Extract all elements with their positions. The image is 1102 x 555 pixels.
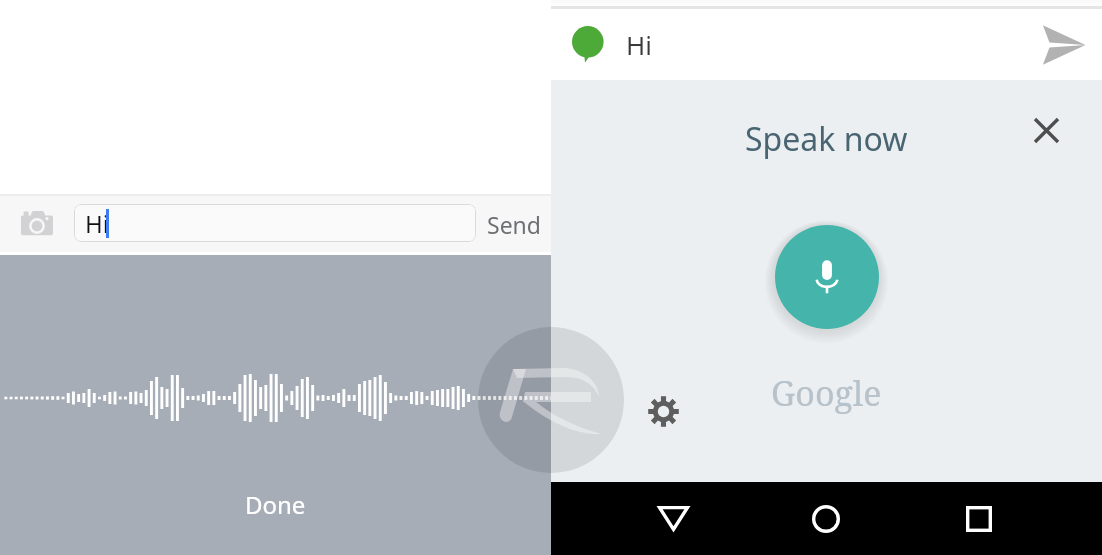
staticText: Hi — [626, 27, 652, 62]
button[interactable]: Recent apps — [947, 482, 1011, 555]
button[interactable]: Send — [1034, 15, 1094, 75]
staticText: Hi — [85, 207, 109, 240]
button[interactable]: Camera — [21, 211, 53, 236]
button[interactable]: Home — [794, 482, 858, 555]
staticText: Done — [245, 488, 306, 521]
staticText: Google — [771, 370, 882, 416]
staticText: Speak now — [745, 117, 908, 161]
staticText: Send — [487, 209, 541, 240]
button[interactable]: Microphone — [775, 225, 879, 329]
button[interactable]: Back — [641, 482, 705, 555]
button[interactable]: Settings — [640, 388, 686, 434]
button[interactable]: Close — [1023, 107, 1069, 153]
